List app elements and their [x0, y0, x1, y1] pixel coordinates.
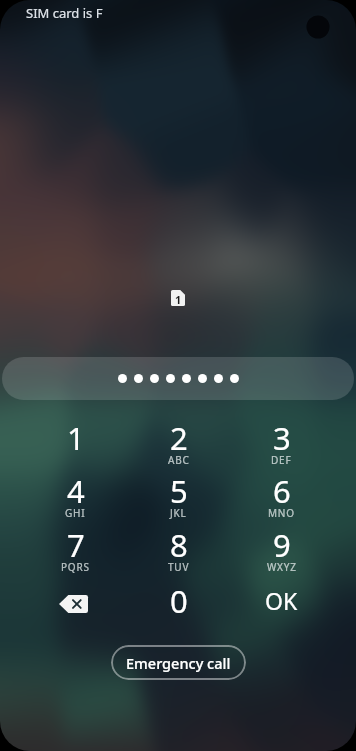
- button[interactable]: 3: [230, 409, 333, 461]
- staticText: 9: [273, 524, 291, 566]
- staticText: 5: [170, 470, 188, 512]
- button[interactable]: 4: [24, 462, 127, 514]
- staticText: ABC: [168, 453, 190, 467]
- staticText: MNO: [268, 506, 295, 520]
- button[interactable]: Emergency call: [111, 645, 246, 680]
- button[interactable]: 2: [127, 409, 230, 461]
- staticText: 8: [170, 524, 188, 566]
- staticText: 1: [67, 417, 85, 459]
- button[interactable]: 9: [230, 516, 333, 568]
- button[interactable]: 1: [24, 409, 127, 461]
- staticText: JKL: [170, 506, 187, 520]
- button[interactable]: 0: [127, 572, 230, 624]
- staticText: 4: [67, 470, 85, 512]
- staticText: 7: [67, 524, 85, 566]
- button[interactable]: 7: [24, 516, 127, 568]
- button[interactable]: 5: [127, 462, 230, 514]
- staticText: TUV: [168, 560, 190, 574]
- staticText: DEF: [271, 453, 292, 467]
- staticText: WXYZ: [267, 560, 297, 574]
- staticText: 0: [170, 580, 188, 622]
- staticText: 2: [170, 417, 188, 459]
- staticText: GHI: [65, 506, 86, 520]
- staticText: 3: [273, 417, 291, 459]
- button[interactable]: 6: [230, 462, 333, 514]
- staticText: 6: [273, 470, 291, 512]
- staticText: 1: [175, 292, 182, 307]
- button[interactable]: OK: [230, 574, 333, 626]
- staticText: SIM card is F: [26, 4, 103, 22]
- staticText: Emergency call: [126, 653, 231, 673]
- staticText: OK: [265, 585, 298, 616]
- button[interactable]: Backspace: [22, 578, 125, 630]
- button[interactable]: 8: [127, 516, 230, 568]
- staticText: PQRS: [61, 560, 90, 574]
